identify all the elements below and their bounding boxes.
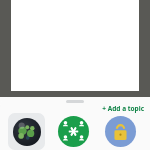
button[interactable]: World topic xyxy=(8,113,45,150)
button[interactable]: Privacy topic xyxy=(102,113,139,150)
button[interactable]: + Add a topic xyxy=(100,103,146,114)
button[interactable]: Community topic xyxy=(55,113,92,150)
staticText: + Add a topic xyxy=(102,104,144,113)
